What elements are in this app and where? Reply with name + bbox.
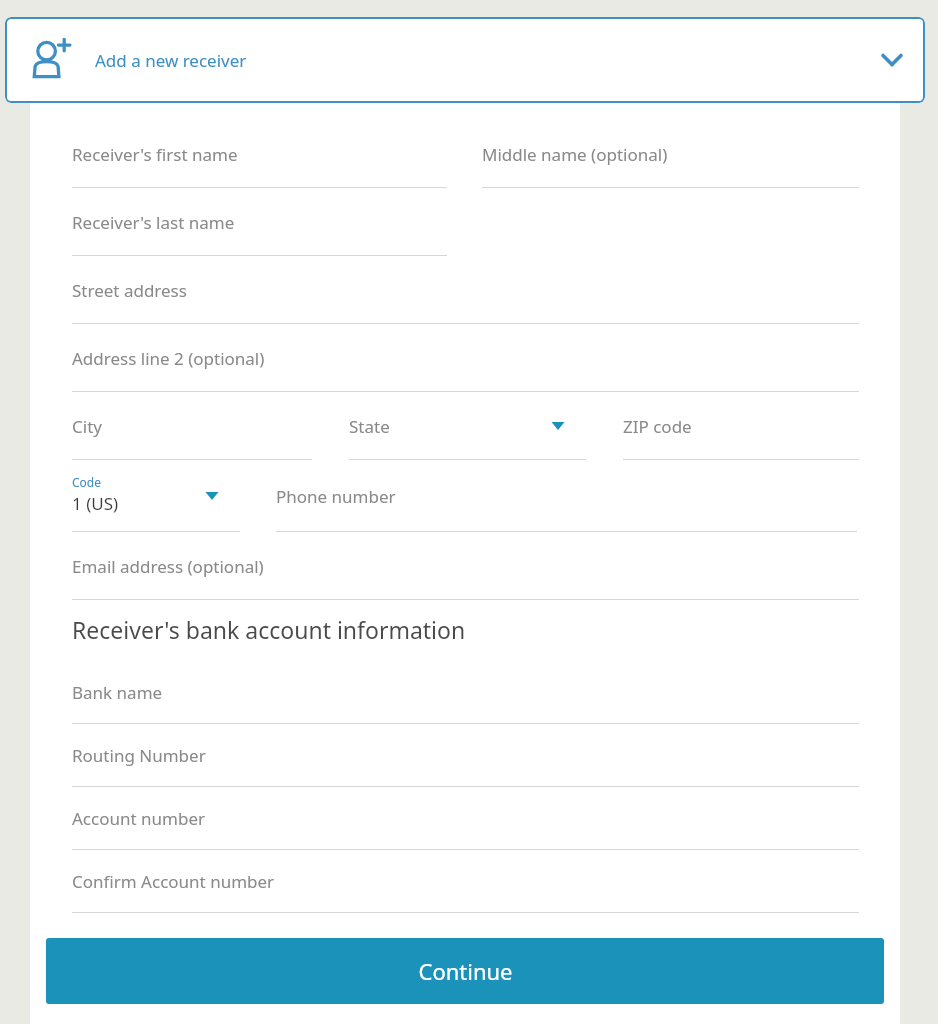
button[interactable]: Routing Number [72, 724, 859, 787]
button[interactable]: Continue [46, 938, 884, 1004]
button[interactable]: Phone number [276, 460, 857, 532]
staticText: Middle name (optional) [482, 143, 668, 166]
button[interactable]: Email address (optional) [72, 532, 859, 600]
staticText: Bank name [72, 681, 163, 704]
staticText: Receiver's last name [72, 211, 235, 234]
staticText: Receiver's first name [72, 143, 238, 166]
other: Open dropdown [548, 416, 568, 436]
other: Open dropdown [202, 486, 222, 506]
button[interactable]: Account number [72, 787, 859, 850]
staticText: Receiver's bank account information [72, 614, 466, 645]
staticText: 1 (US) [72, 492, 119, 515]
button[interactable]: State [349, 392, 586, 460]
staticText: Street address [72, 279, 187, 302]
button[interactable]: Bank name [72, 661, 859, 724]
button[interactable]: Receiver's first name [72, 120, 447, 188]
staticText: Add a new receiver [95, 49, 247, 72]
button[interactable]: City [72, 392, 312, 460]
staticText: ZIP code [623, 415, 692, 438]
button[interactable]: ZIP code [623, 392, 859, 460]
staticText: Phone number [276, 485, 396, 508]
staticText: City [72, 415, 102, 438]
staticText: Continue [418, 956, 513, 986]
staticText: Address line 2 (optional) [72, 347, 265, 370]
staticText: Routing Number [72, 744, 206, 767]
staticText: State [349, 415, 390, 438]
button[interactable]: Confirm Account number [72, 850, 859, 913]
staticText: Account number [72, 807, 206, 830]
staticText: Email address (optional) [72, 555, 264, 578]
button[interactable]: Address line 2 (optional) [72, 324, 859, 392]
button[interactable]: Street address [72, 256, 859, 324]
staticText: Code [72, 474, 101, 490]
staticText: Confirm Account number [72, 870, 275, 893]
other: Collapse section [875, 43, 909, 77]
button[interactable]: Code [72, 460, 240, 532]
button[interactable]: Add a new receiver [5, 17, 925, 103]
button[interactable]: Receiver's last name [72, 188, 447, 256]
button[interactable]: Middle name (optional) [482, 120, 859, 188]
